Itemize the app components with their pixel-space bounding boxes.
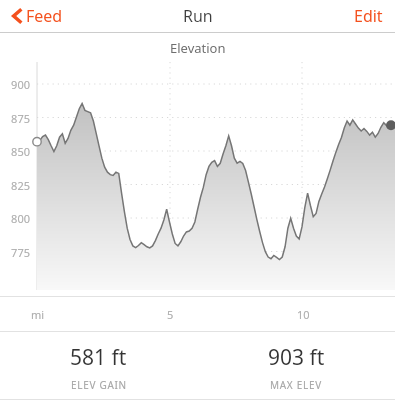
staticText: 903 ft [268, 343, 325, 372]
button[interactable]: 903 ft [197, 332, 395, 392]
button[interactable]: Feed [8, 2, 67, 30]
staticText: mi [31, 307, 45, 322]
button[interactable]: Edit [350, 2, 387, 30]
staticText: Elevation [170, 39, 226, 57]
staticText: MAX ELEV [270, 378, 322, 392]
staticText: 5 [167, 307, 174, 322]
staticText: Feed [26, 5, 63, 27]
staticText: ELEV GAIN [71, 378, 127, 392]
staticText: Run [183, 5, 213, 27]
staticText: Edit [354, 5, 383, 27]
button[interactable]: 581 ft [0, 332, 197, 392]
staticText: 581 ft [70, 343, 127, 372]
staticText: 800 [0, 211, 30, 226]
staticText: 850 [0, 144, 30, 159]
staticText: 10 [297, 307, 310, 322]
staticText: 775 [0, 245, 30, 260]
staticText: 825 [0, 178, 30, 193]
staticText: 900 [0, 77, 30, 92]
staticText: 875 [0, 111, 30, 126]
